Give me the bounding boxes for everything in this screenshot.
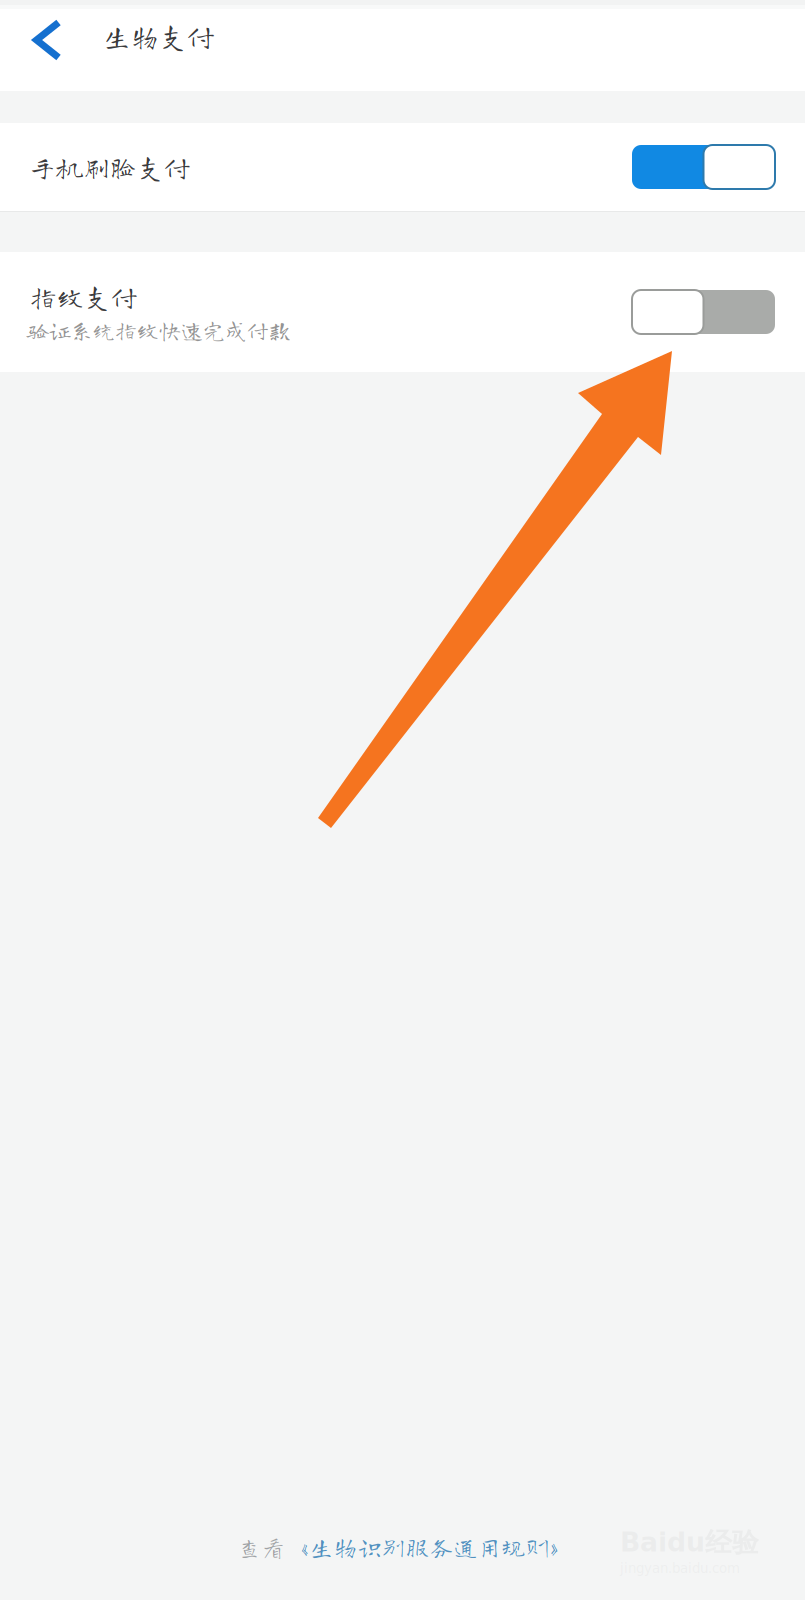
- button[interactable]: 手机刷脸支付: [0, 123, 805, 211]
- staticText: 生物支付: [103, 22, 215, 50]
- button[interactable]: 查看: [220, 1528, 584, 1572]
- staticText: 《生物识别服务通用规则》: [285, 1535, 573, 1559]
- button[interactable]: 指纹支付: [0, 252, 805, 372]
- staticText: Baidu经验: [620, 1526, 759, 1559]
- staticText: 查看: [237, 1535, 285, 1559]
- staticText: 手机刷脸支付: [29, 154, 191, 180]
- staticText: 指纹支付: [30, 283, 138, 310]
- staticText: 验证系统指纹快速完成付款: [27, 319, 291, 341]
- button[interactable]: 返回: [0, 9, 91, 79]
